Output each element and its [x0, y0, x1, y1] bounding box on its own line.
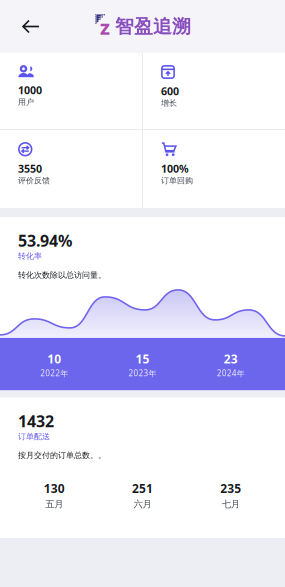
staticText: 订单回购 [161, 176, 193, 185]
staticText: 七月 [222, 498, 240, 510]
staticText: 1432 [18, 410, 54, 432]
staticText: 五月 [45, 498, 63, 510]
staticText: 130 [44, 480, 65, 496]
staticText: 251 [132, 480, 153, 496]
staticText: 转化次数除以总访问量。 [18, 270, 106, 280]
staticText: 15 [135, 351, 149, 367]
staticText: 按月交付的订单总数。。 [18, 450, 106, 460]
staticText: 3550 [18, 161, 42, 176]
staticText: Z [100, 18, 110, 39]
staticText: 53.94% [18, 230, 72, 251]
staticText: 增长 [161, 98, 177, 108]
staticText: 2023年 [128, 368, 156, 378]
staticText: 23 [224, 351, 238, 367]
staticText: 10 [47, 351, 61, 367]
staticText: 六月 [133, 498, 151, 510]
button[interactable]: Back [0, 6, 54, 46]
staticText: 智盈追溯 [115, 15, 191, 38]
staticText: 100% [161, 161, 189, 176]
staticText: 订单配送 [18, 432, 50, 441]
staticText: 用户 [18, 97, 34, 107]
staticText: 2022年 [40, 368, 68, 378]
staticText: 1000 [18, 83, 42, 97]
staticText: 600 [161, 84, 179, 98]
staticText: 评价反馈 [18, 176, 50, 185]
staticText: 2024年 [217, 368, 245, 378]
staticText: 235 [220, 480, 241, 496]
staticText: 转化率 [18, 251, 42, 261]
